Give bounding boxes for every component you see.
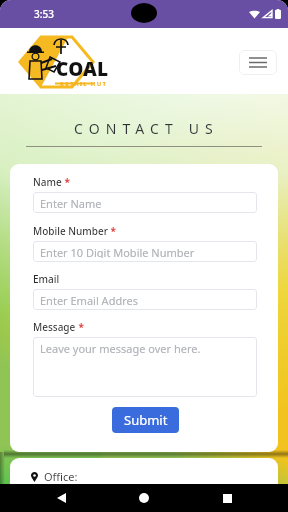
button[interactable]: Enter 10 Digit Mobile Number	[33, 241, 257, 262]
staticText: Submit	[124, 411, 168, 429]
staticText: Enter 10 Digit Mobile Number	[40, 245, 195, 258]
button[interactable]: Home	[122, 484, 166, 512]
staticText: Email	[33, 272, 60, 286]
staticText: 3:53	[34, 7, 54, 21]
button[interactable]: Submit	[112, 407, 179, 433]
button[interactable]: Recent apps	[205, 484, 249, 512]
staticText: Leave your message over here.	[40, 341, 201, 356]
staticText: RETAIL HUT	[60, 80, 108, 88]
button[interactable]: Leave your message over here.	[33, 337, 257, 397]
staticText: COAL	[56, 56, 109, 82]
staticText: Enter Name	[40, 196, 102, 209]
staticText: Office:	[44, 469, 78, 484]
staticText: Message	[33, 320, 76, 334]
button[interactable]: Enter Email Addres	[33, 289, 257, 310]
staticText: *	[62, 175, 71, 189]
staticText: Mobile Number	[33, 224, 108, 238]
staticText: Name	[33, 175, 62, 189]
staticText: CONTACT US	[74, 119, 219, 138]
staticText: Enter Email Addres	[40, 293, 138, 306]
button[interactable]: Enter Name	[33, 192, 257, 213]
button[interactable]: Menu	[239, 50, 277, 75]
staticText: *	[76, 320, 85, 334]
button[interactable]: Back	[39, 484, 83, 512]
staticText: *	[108, 224, 117, 238]
